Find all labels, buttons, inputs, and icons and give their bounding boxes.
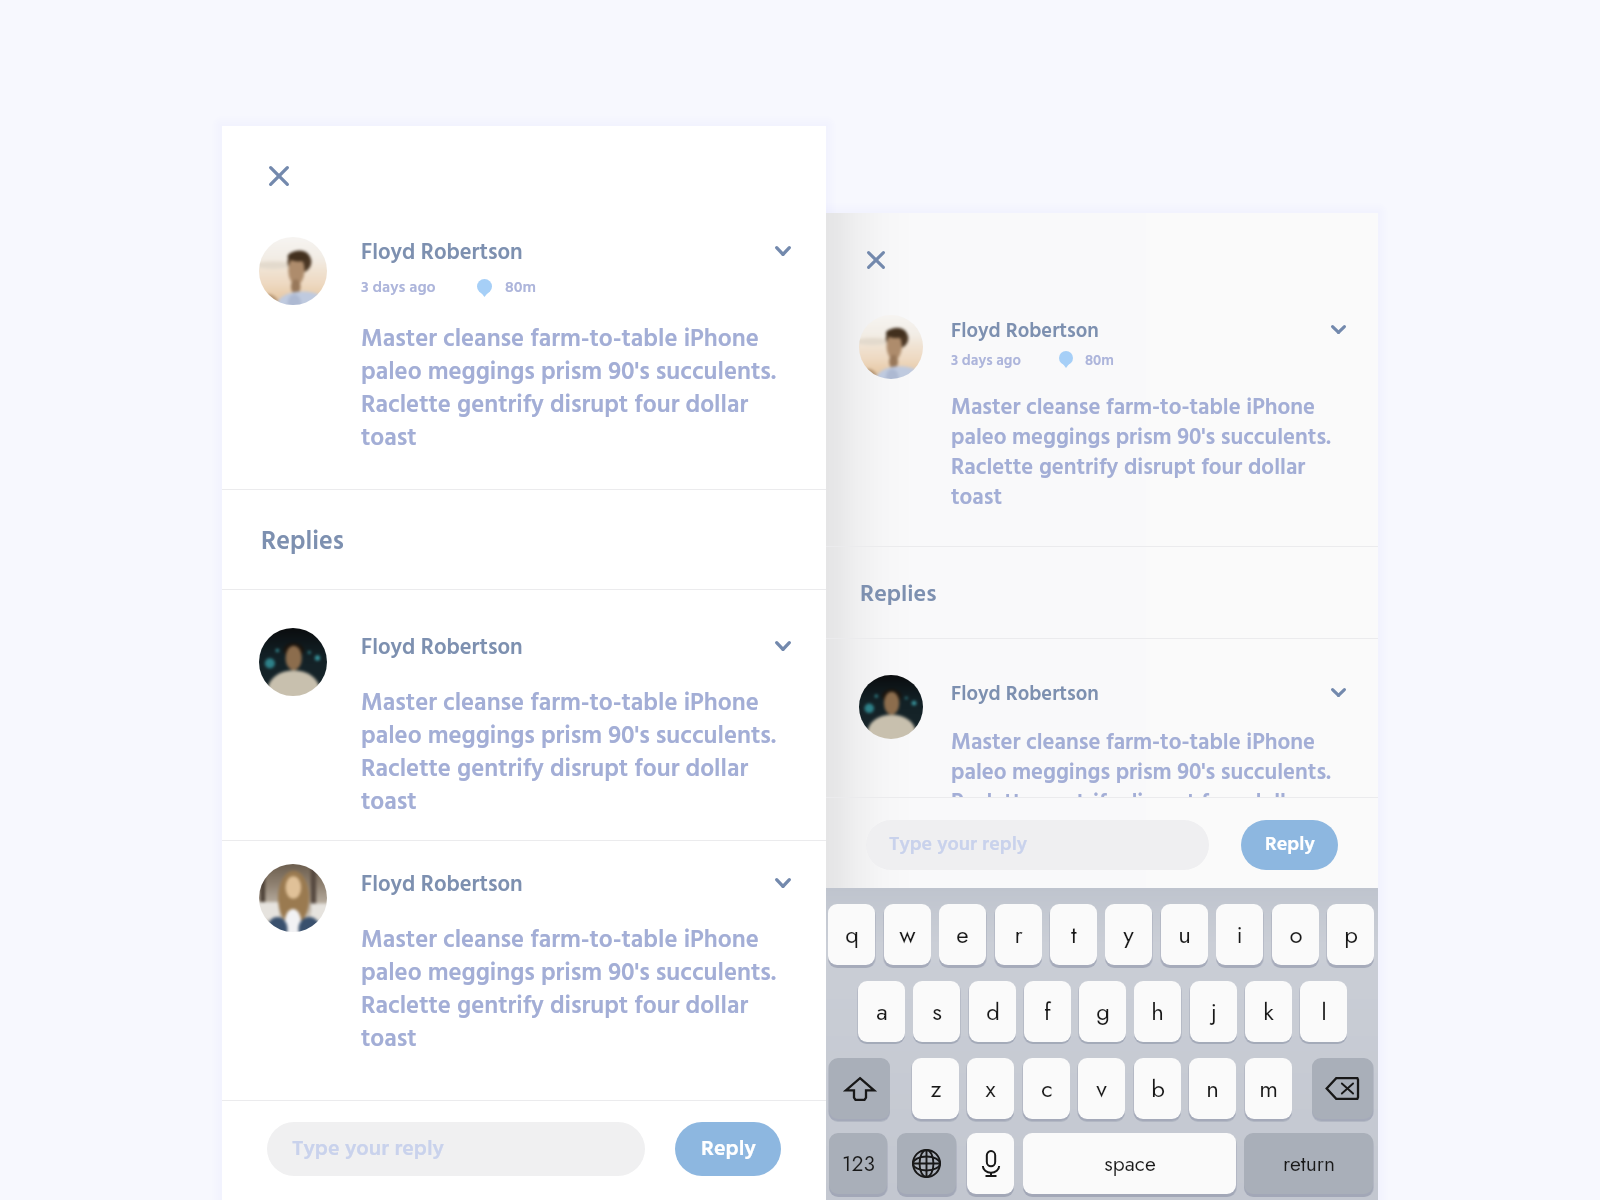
staticText: h (1151, 994, 1164, 1029)
button[interactable]: Close (855, 239, 897, 281)
staticText: x (985, 1071, 996, 1106)
button[interactable]: 123 (829, 1133, 887, 1194)
button[interactable]: x (967, 1058, 1014, 1119)
button[interactable]: Close (258, 155, 300, 197)
button[interactable]: r (995, 904, 1042, 965)
button[interactable]: d (969, 981, 1016, 1042)
button[interactable]: Shift (829, 1058, 890, 1119)
button[interactable]: return (1244, 1133, 1373, 1194)
button[interactable]: i (1216, 904, 1263, 965)
staticText: return (1283, 1149, 1335, 1179)
staticText: 80m (1085, 349, 1114, 373)
staticText: q (845, 917, 859, 952)
staticText: j (1211, 994, 1217, 1029)
button[interactable]: z (912, 1058, 959, 1119)
button[interactable]: Languages (897, 1133, 956, 1194)
staticText: 3 days ago (951, 349, 1021, 373)
staticText: b (1151, 1071, 1165, 1106)
staticText: p (1344, 917, 1358, 952)
button[interactable]: m (1245, 1058, 1292, 1119)
staticText: w (899, 917, 916, 952)
button[interactable]: w (884, 904, 931, 965)
button[interactable]: n (1189, 1058, 1236, 1119)
button[interactable]: q (828, 904, 875, 965)
button[interactable]: y (1105, 904, 1152, 965)
staticText: z (930, 1071, 942, 1106)
button[interactable]: p (1327, 904, 1374, 965)
button[interactable]: t (1050, 904, 1097, 965)
button[interactable]: g (1079, 981, 1126, 1042)
staticText: m (1259, 1071, 1278, 1106)
button[interactable]: f (1024, 981, 1071, 1042)
staticText: n (1206, 1071, 1219, 1106)
button[interactable]: Reply (675, 1122, 781, 1176)
staticText: t (1071, 917, 1077, 952)
button[interactable]: h (1134, 981, 1181, 1042)
staticText: space (1104, 1149, 1156, 1179)
staticText: Master cleanse farm-to-table iPhone pale… (361, 921, 793, 1059)
staticText: i (1236, 917, 1243, 952)
staticText: Replies (860, 576, 937, 614)
staticText: Master cleanse farm-to-table iPhone pale… (951, 725, 1347, 851)
staticText: y (1123, 917, 1134, 952)
button[interactable]: o (1272, 904, 1319, 965)
staticText: 123 (842, 1149, 875, 1179)
staticText: Floyd Robertson (951, 678, 1099, 711)
staticText: g (1096, 994, 1110, 1029)
staticText: Reply (701, 1132, 756, 1167)
staticText: u (1178, 917, 1191, 952)
staticText: f (1044, 994, 1051, 1029)
staticText: 80m (505, 275, 536, 301)
button[interactable]: u (1161, 904, 1208, 965)
button[interactable]: Show more (1319, 312, 1357, 346)
staticText: Master cleanse farm-to-table iPhone pale… (361, 684, 793, 822)
staticText: e (956, 917, 969, 952)
button[interactable]: space (1023, 1133, 1236, 1194)
button[interactable]: c (1023, 1058, 1070, 1119)
staticText: r (1014, 917, 1023, 952)
staticText: o (1289, 917, 1303, 952)
staticText: Reply (1265, 829, 1315, 861)
staticText: Floyd Robertson (361, 867, 523, 903)
staticText: v (1096, 1071, 1107, 1106)
staticText: Type your reply (889, 829, 1028, 861)
staticText: c (1041, 1071, 1053, 1106)
button[interactable]: Show more (764, 234, 802, 268)
staticText: Master cleanse farm-to-table iPhone pale… (361, 320, 793, 458)
staticText: Floyd Robertson (361, 235, 523, 271)
staticText: s (932, 994, 942, 1029)
staticText: Master cleanse farm-to-table iPhone pale… (951, 390, 1347, 516)
button[interactable]: Type your reply (267, 1122, 645, 1176)
button[interactable]: b (1134, 1058, 1181, 1119)
staticText: Floyd Robertson (361, 630, 523, 666)
button[interactable]: k (1245, 981, 1292, 1042)
button[interactable]: j (1190, 981, 1237, 1042)
button[interactable]: l (1300, 981, 1347, 1042)
staticText: Type your reply (292, 1132, 444, 1167)
staticText: l (1321, 994, 1327, 1029)
staticText: Floyd Robertson (951, 315, 1099, 348)
button[interactable]: Show more (1319, 675, 1357, 709)
staticText: k (1263, 994, 1274, 1029)
staticText: Replies (261, 522, 344, 564)
button[interactable]: v (1078, 1058, 1125, 1119)
staticText: 3 days ago (361, 275, 436, 301)
button[interactable]: e (939, 904, 986, 965)
button[interactable]: s (913, 981, 960, 1042)
button[interactable]: a (858, 981, 905, 1042)
staticText: d (986, 994, 1000, 1029)
staticText: a (876, 994, 888, 1029)
button[interactable]: Type your reply (866, 820, 1209, 870)
button[interactable]: Backspace (1312, 1058, 1373, 1119)
button[interactable]: Show more (764, 629, 802, 663)
button[interactable]: Voice input (967, 1133, 1014, 1194)
button[interactable]: Reply (1241, 820, 1338, 870)
button[interactable]: Show more (764, 866, 802, 900)
